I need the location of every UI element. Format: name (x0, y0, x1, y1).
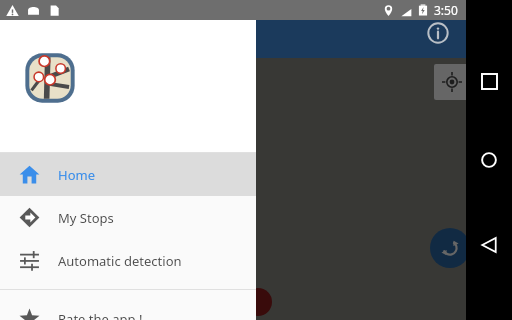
button[interactable]: Refresh (430, 228, 470, 268)
button[interactable]: Home (466, 137, 512, 183)
button[interactable]: Rate the app ! (0, 297, 256, 320)
staticText: My Stops (58, 209, 114, 227)
staticText: Rate the app ! (58, 310, 143, 320)
button[interactable]: Automatic detection (0, 239, 256, 282)
button[interactable]: Back (466, 222, 512, 268)
staticText: Automatic detection (58, 252, 182, 270)
button[interactable]: Recents (466, 58, 512, 104)
button[interactable]: My location (434, 64, 470, 100)
button[interactable]: My Stops (0, 196, 256, 239)
staticText: Home (58, 166, 95, 184)
staticText: 3:50 (434, 2, 458, 18)
button[interactable]: Home (0, 153, 256, 196)
button[interactable]: Info (418, 13, 458, 53)
